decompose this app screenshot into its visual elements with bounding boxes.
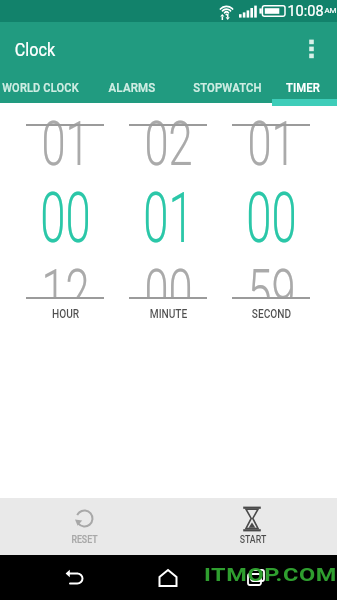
staticText: TIMER [286, 80, 320, 95]
button[interactable]: WORLD CLOCK [0, 77, 90, 97]
staticText: ALARMS [108, 80, 156, 95]
staticText: 02 [144, 107, 193, 177]
button[interactable]: START [168, 498, 337, 555]
button[interactable] [228, 555, 284, 600]
staticText: 12 [41, 255, 90, 298]
staticText: Clock [15, 38, 55, 60]
staticText: 00 [40, 176, 91, 256]
staticText: 00 [144, 255, 193, 298]
staticText: MINUTE [149, 306, 188, 321]
staticText: WORLD CLOCK [2, 80, 79, 95]
staticText: 59 [247, 255, 296, 298]
staticText: AM [324, 6, 337, 15]
staticText: 10:08 [287, 3, 324, 20]
staticText: 01 [41, 107, 90, 177]
button[interactable]: STOPWATCH [177, 77, 277, 97]
staticText: SECOND [252, 306, 291, 321]
button[interactable] [47, 555, 103, 600]
staticText: STOPWATCH [193, 80, 262, 95]
staticText: RESET [71, 533, 98, 546]
button[interactable] [140, 555, 196, 600]
staticText: 01 [143, 176, 194, 256]
button[interactable]: RESET [0, 498, 168, 555]
staticText: 01 [247, 107, 296, 177]
staticText: 00 [246, 176, 297, 256]
staticText: HOUR [52, 306, 79, 321]
button[interactable]: ALARMS [82, 77, 182, 97]
staticText: ITMOP.COM [204, 564, 337, 586]
button[interactable]: TIMER [253, 77, 337, 97]
staticText: START [239, 533, 267, 546]
button[interactable] [306, 39, 318, 61]
